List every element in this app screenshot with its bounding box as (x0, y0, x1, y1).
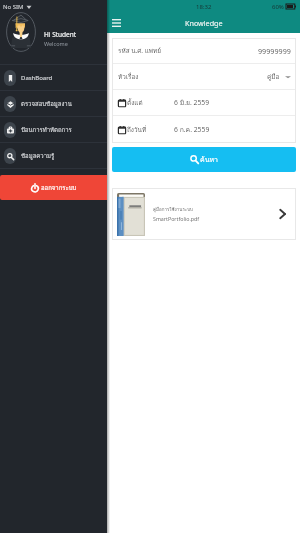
button[interactable]: ตั้งแต่ (112, 90, 296, 115)
staticText: รหัส น.ศ. แพทย์ (118, 46, 162, 56)
button[interactable]: คู่มือการใช้งานระบบ (112, 188, 296, 240)
staticText: DashBoard (21, 74, 53, 82)
staticText: Knowledge (185, 18, 223, 28)
staticText: 6 ก.ค. 2559 (174, 124, 210, 135)
button[interactable]: ตรวจสอบข้อมูลงาน (4, 91, 107, 116)
staticText: Hi Student (44, 30, 77, 39)
button[interactable]: ออกจากระบบ (0, 175, 107, 200)
staticText: SmartPortfolio.pdf (153, 215, 200, 222)
staticText: ออกจากระบบ (41, 183, 77, 193)
staticText: 6 มิ.ย. 2559 (174, 97, 210, 108)
staticText: Welcome (44, 40, 68, 47)
staticText: ป้อนการทำหัตถการ (21, 125, 72, 135)
button[interactable]: DashBoard (4, 65, 107, 90)
staticText: คู่มือ (267, 72, 280, 82)
button[interactable]: ถึงวันที่ (112, 116, 296, 143)
button[interactable]: รหัส น.ศ. แพทย์ (118, 38, 291, 63)
staticText: ข้อมูลความรู้ (21, 151, 55, 161)
staticText: คู่มือการใช้งานระบบ (153, 206, 193, 213)
staticText: No SIM (3, 3, 24, 11)
staticText: หัวเรื่อง (118, 72, 139, 82)
staticText: 60% (272, 3, 284, 11)
staticText: ค้นหา (200, 154, 219, 165)
button[interactable]: ข้อมูลความรู้ (4, 143, 107, 168)
staticText: 99999999 (258, 46, 291, 56)
staticText: 18:32 (196, 3, 212, 11)
staticText: ตั้งแต่ (127, 98, 143, 108)
button[interactable]: Open navigation menu (110, 17, 122, 29)
button[interactable]: ค้นหา (112, 147, 296, 172)
button[interactable]: หัวเรื่อง (118, 64, 291, 89)
staticText: ตรวจสอบข้อมูลงาน (21, 99, 72, 109)
staticText: ถึงวันที่ (127, 125, 147, 135)
button[interactable]: ป้อนการทำหัตถการ (4, 117, 107, 142)
